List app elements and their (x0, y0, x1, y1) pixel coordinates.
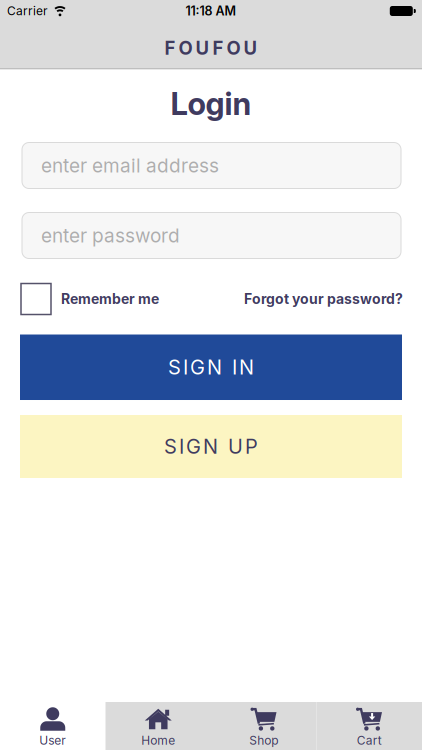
staticText: 11:18 AM (185, 3, 236, 18)
staticText: F O U F O U (164, 37, 257, 59)
staticText: S I G N U P (164, 434, 258, 459)
staticText: Login (170, 85, 251, 122)
staticText: Carrier (7, 4, 48, 18)
staticText: Remember me (61, 290, 159, 307)
staticText: Cart (357, 733, 382, 747)
staticText: Home (141, 733, 175, 747)
staticText: Forgot your password? (244, 290, 403, 307)
staticText: enter email address (41, 154, 219, 177)
staticText: enter password (41, 224, 180, 247)
staticText: User (39, 733, 66, 747)
staticText: S I G N I N (168, 355, 254, 379)
staticText: Shop (249, 733, 278, 747)
